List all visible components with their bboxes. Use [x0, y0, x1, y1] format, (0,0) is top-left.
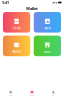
- button[interactable]: Me: [43, 88, 64, 100]
- staticText: Wallet: [26, 6, 38, 11]
- staticText: Stats: [44, 26, 50, 30]
- button[interactable]: Cards: [21, 88, 43, 100]
- staticText: Home: [9, 94, 13, 96]
- button[interactable]: Stats: [34, 12, 61, 33]
- staticText: Me: [52, 94, 54, 96]
- button[interactable]: Cards: [3, 12, 30, 33]
- staticText: 9:41: [2, 0, 9, 5]
- staticText: Cards: [29, 94, 34, 96]
- button[interactable]: Store: [34, 36, 61, 56]
- button[interactable]: Wallet: [3, 36, 30, 56]
- staticText: Cards: [13, 26, 21, 30]
- staticText: Store: [44, 50, 51, 54]
- button[interactable]: Home: [0, 88, 21, 100]
- staticText: Wallet: [12, 50, 21, 54]
